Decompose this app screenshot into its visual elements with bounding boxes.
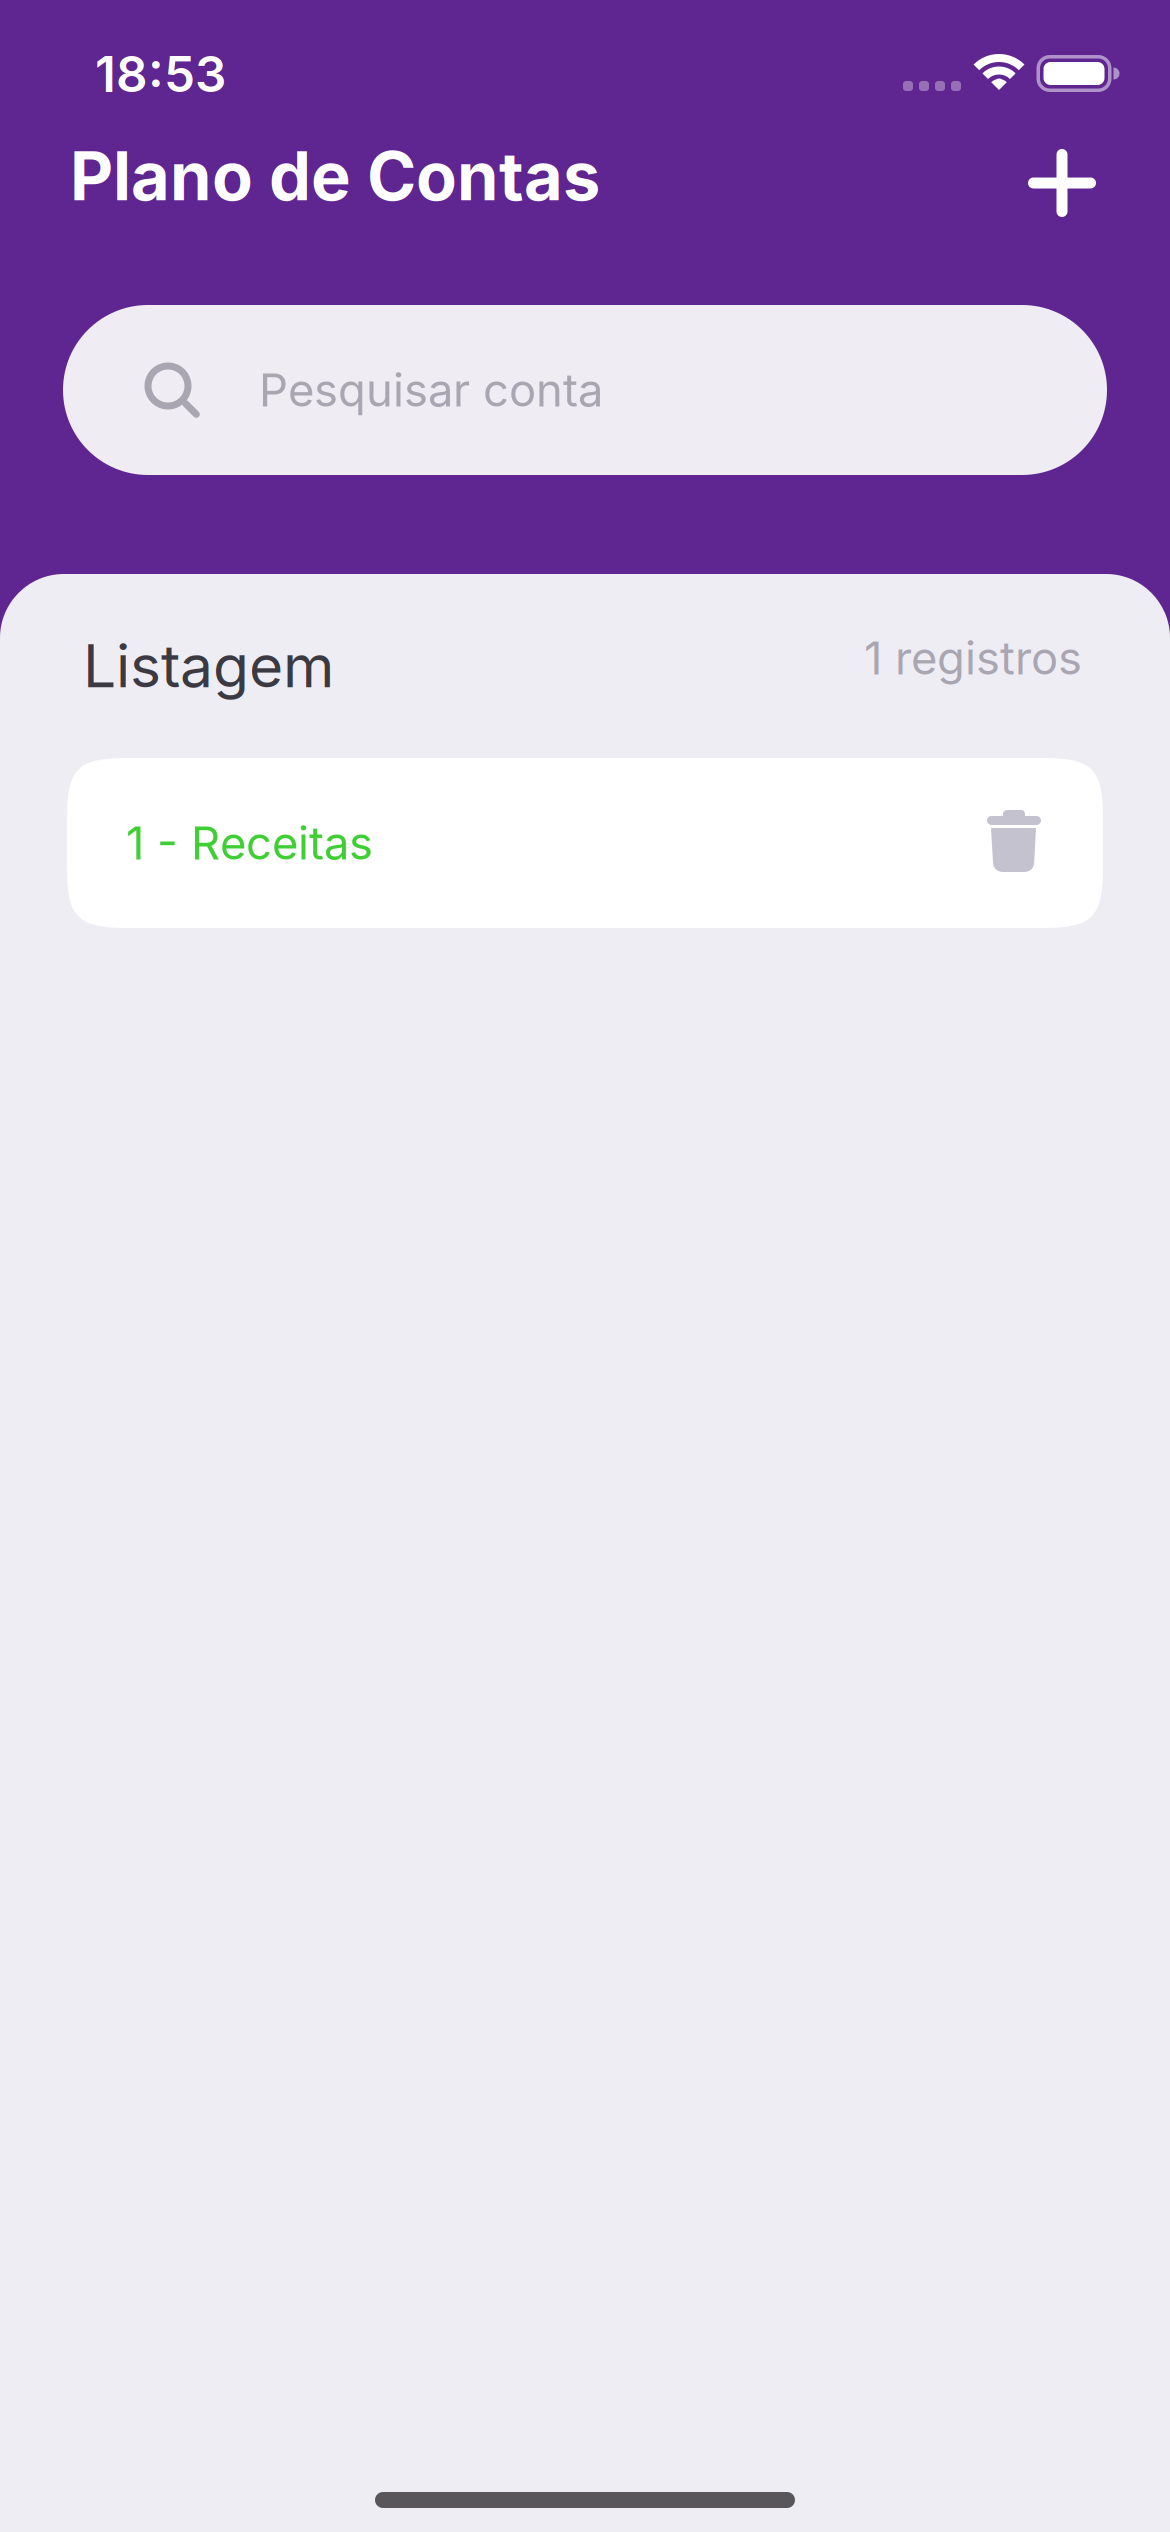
staticText: Plano de Contas — [70, 136, 600, 216]
staticText: 1 registros — [864, 631, 1082, 685]
button[interactable]: Excluir conta — [987, 810, 1041, 872]
staticText: Pesquisar conta — [259, 363, 603, 417]
staticText: 18:53 — [95, 44, 226, 104]
staticText: 1 - Receitas — [126, 816, 373, 870]
button[interactable]: Adicionar — [1007, 128, 1117, 238]
staticText: Listagem — [83, 630, 334, 701]
button[interactable]: 1 - Receitas — [67, 758, 1103, 928]
button[interactable]: Pesquisar conta — [63, 305, 1107, 475]
